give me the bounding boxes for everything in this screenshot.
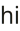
staticText: hi <box>0 0 20 30</box>
